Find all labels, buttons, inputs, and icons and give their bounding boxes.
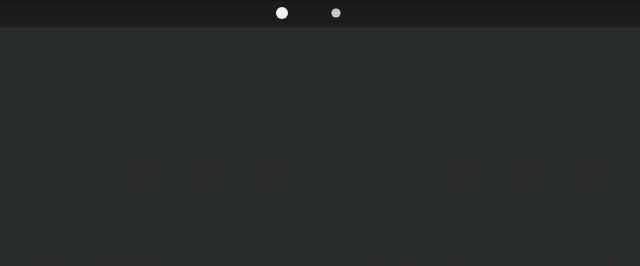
button[interactable]: Page 1, selected — [272, 3, 292, 23]
button[interactable]: Page 2 — [326, 3, 346, 23]
